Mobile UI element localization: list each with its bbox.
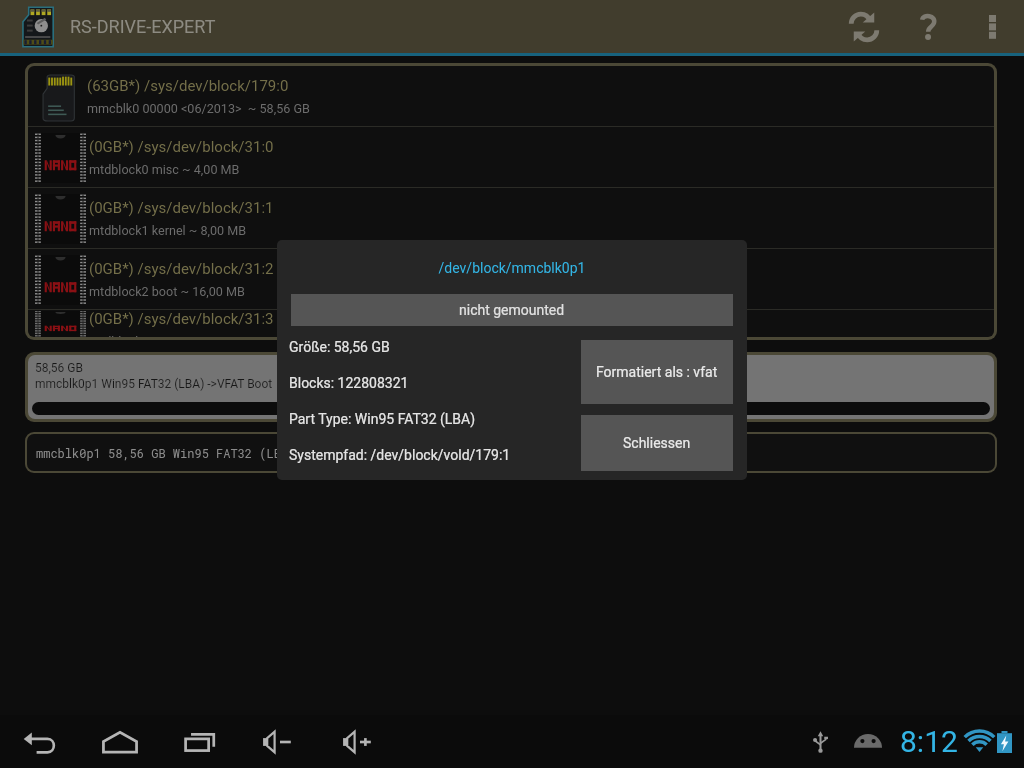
staticText: mmcblk0p1 58,56 GB Win95 FAT32 (LBA) ->V… — [36, 445, 382, 461]
button[interactable]: Recent apps — [176, 718, 224, 766]
button[interactable]: (0GB*) /sys/dev/block/31:0 — [28, 127, 994, 187]
button[interactable]: Help — [896, 0, 960, 53]
button[interactable]: More options — [960, 0, 1024, 53]
staticText: mtdblock0 misc ~ 4,00 MB — [89, 162, 240, 177]
button[interactable]: Schliessen — [581, 415, 733, 471]
staticText: 58,56 GB — [35, 361, 83, 375]
staticText: (0GB*) /sys/dev/block/31:3 — [89, 310, 274, 328]
staticText: mtdblock3 recovery ~ 16,00 MB — [89, 334, 267, 337]
staticText: nicht gemounted — [459, 302, 565, 318]
staticText: (0GB*) /sys/dev/block/31:1 — [89, 199, 274, 217]
button[interactable]: (0GB*) /sys/dev/block/31:1 — [28, 188, 994, 248]
staticText: RS-DRIVE-EXPERT — [70, 16, 216, 37]
staticText: mtdblock2 boot ~ 16,00 MB — [89, 284, 245, 299]
button[interactable]: Formatiert als : vfat — [581, 340, 733, 404]
button[interactable]: (0GB*) /sys/dev/block/31:2 — [28, 249, 994, 309]
staticText: (0GB*) /sys/dev/block/31:0 — [89, 138, 274, 156]
button[interactable]: 58,56 GB — [28, 355, 994, 419]
staticText: Systempfad: /dev/block/vold/179:1 — [289, 447, 511, 463]
staticText: Schliessen — [623, 435, 691, 451]
staticText: mmcblk0p1 Win95 FAT32 (LBA) ->VFAT Boot — [35, 377, 273, 391]
staticText: /dev/block/mmcblk0p1 — [277, 260, 747, 276]
staticText: mtdblock1 kernel ~ 8,00 MB — [89, 223, 247, 238]
staticText: Größe: 58,56 GB — [289, 339, 390, 355]
staticText: mmcblk0 00000 <06/2013> ~ 58,56 GB — [87, 101, 310, 116]
staticText: (63GB*) /sys/dev/block/179:0 — [87, 77, 289, 95]
button[interactable]: Refresh — [832, 0, 896, 53]
staticText: (0GB*) /sys/dev/block/31:2 — [89, 260, 274, 278]
button[interactable]: (63GB*) /sys/dev/block/179:0 — [28, 66, 994, 126]
button[interactable]: Volume down — [254, 716, 306, 768]
staticText: Part Type: Win95 FAT32 (LBA) — [289, 411, 476, 427]
button[interactable]: Volume up — [334, 716, 386, 768]
button[interactable]: nicht gemounted — [291, 294, 733, 326]
button[interactable]: Back — [16, 718, 64, 766]
staticText: Blocks: 122808321 — [289, 375, 409, 391]
button[interactable]: Home — [96, 718, 144, 766]
staticText: 8:12 — [900, 724, 958, 759]
button[interactable]: (0GB*) /sys/dev/block/31:3 — [28, 310, 994, 337]
staticText: Formatiert als : vfat — [596, 364, 718, 380]
